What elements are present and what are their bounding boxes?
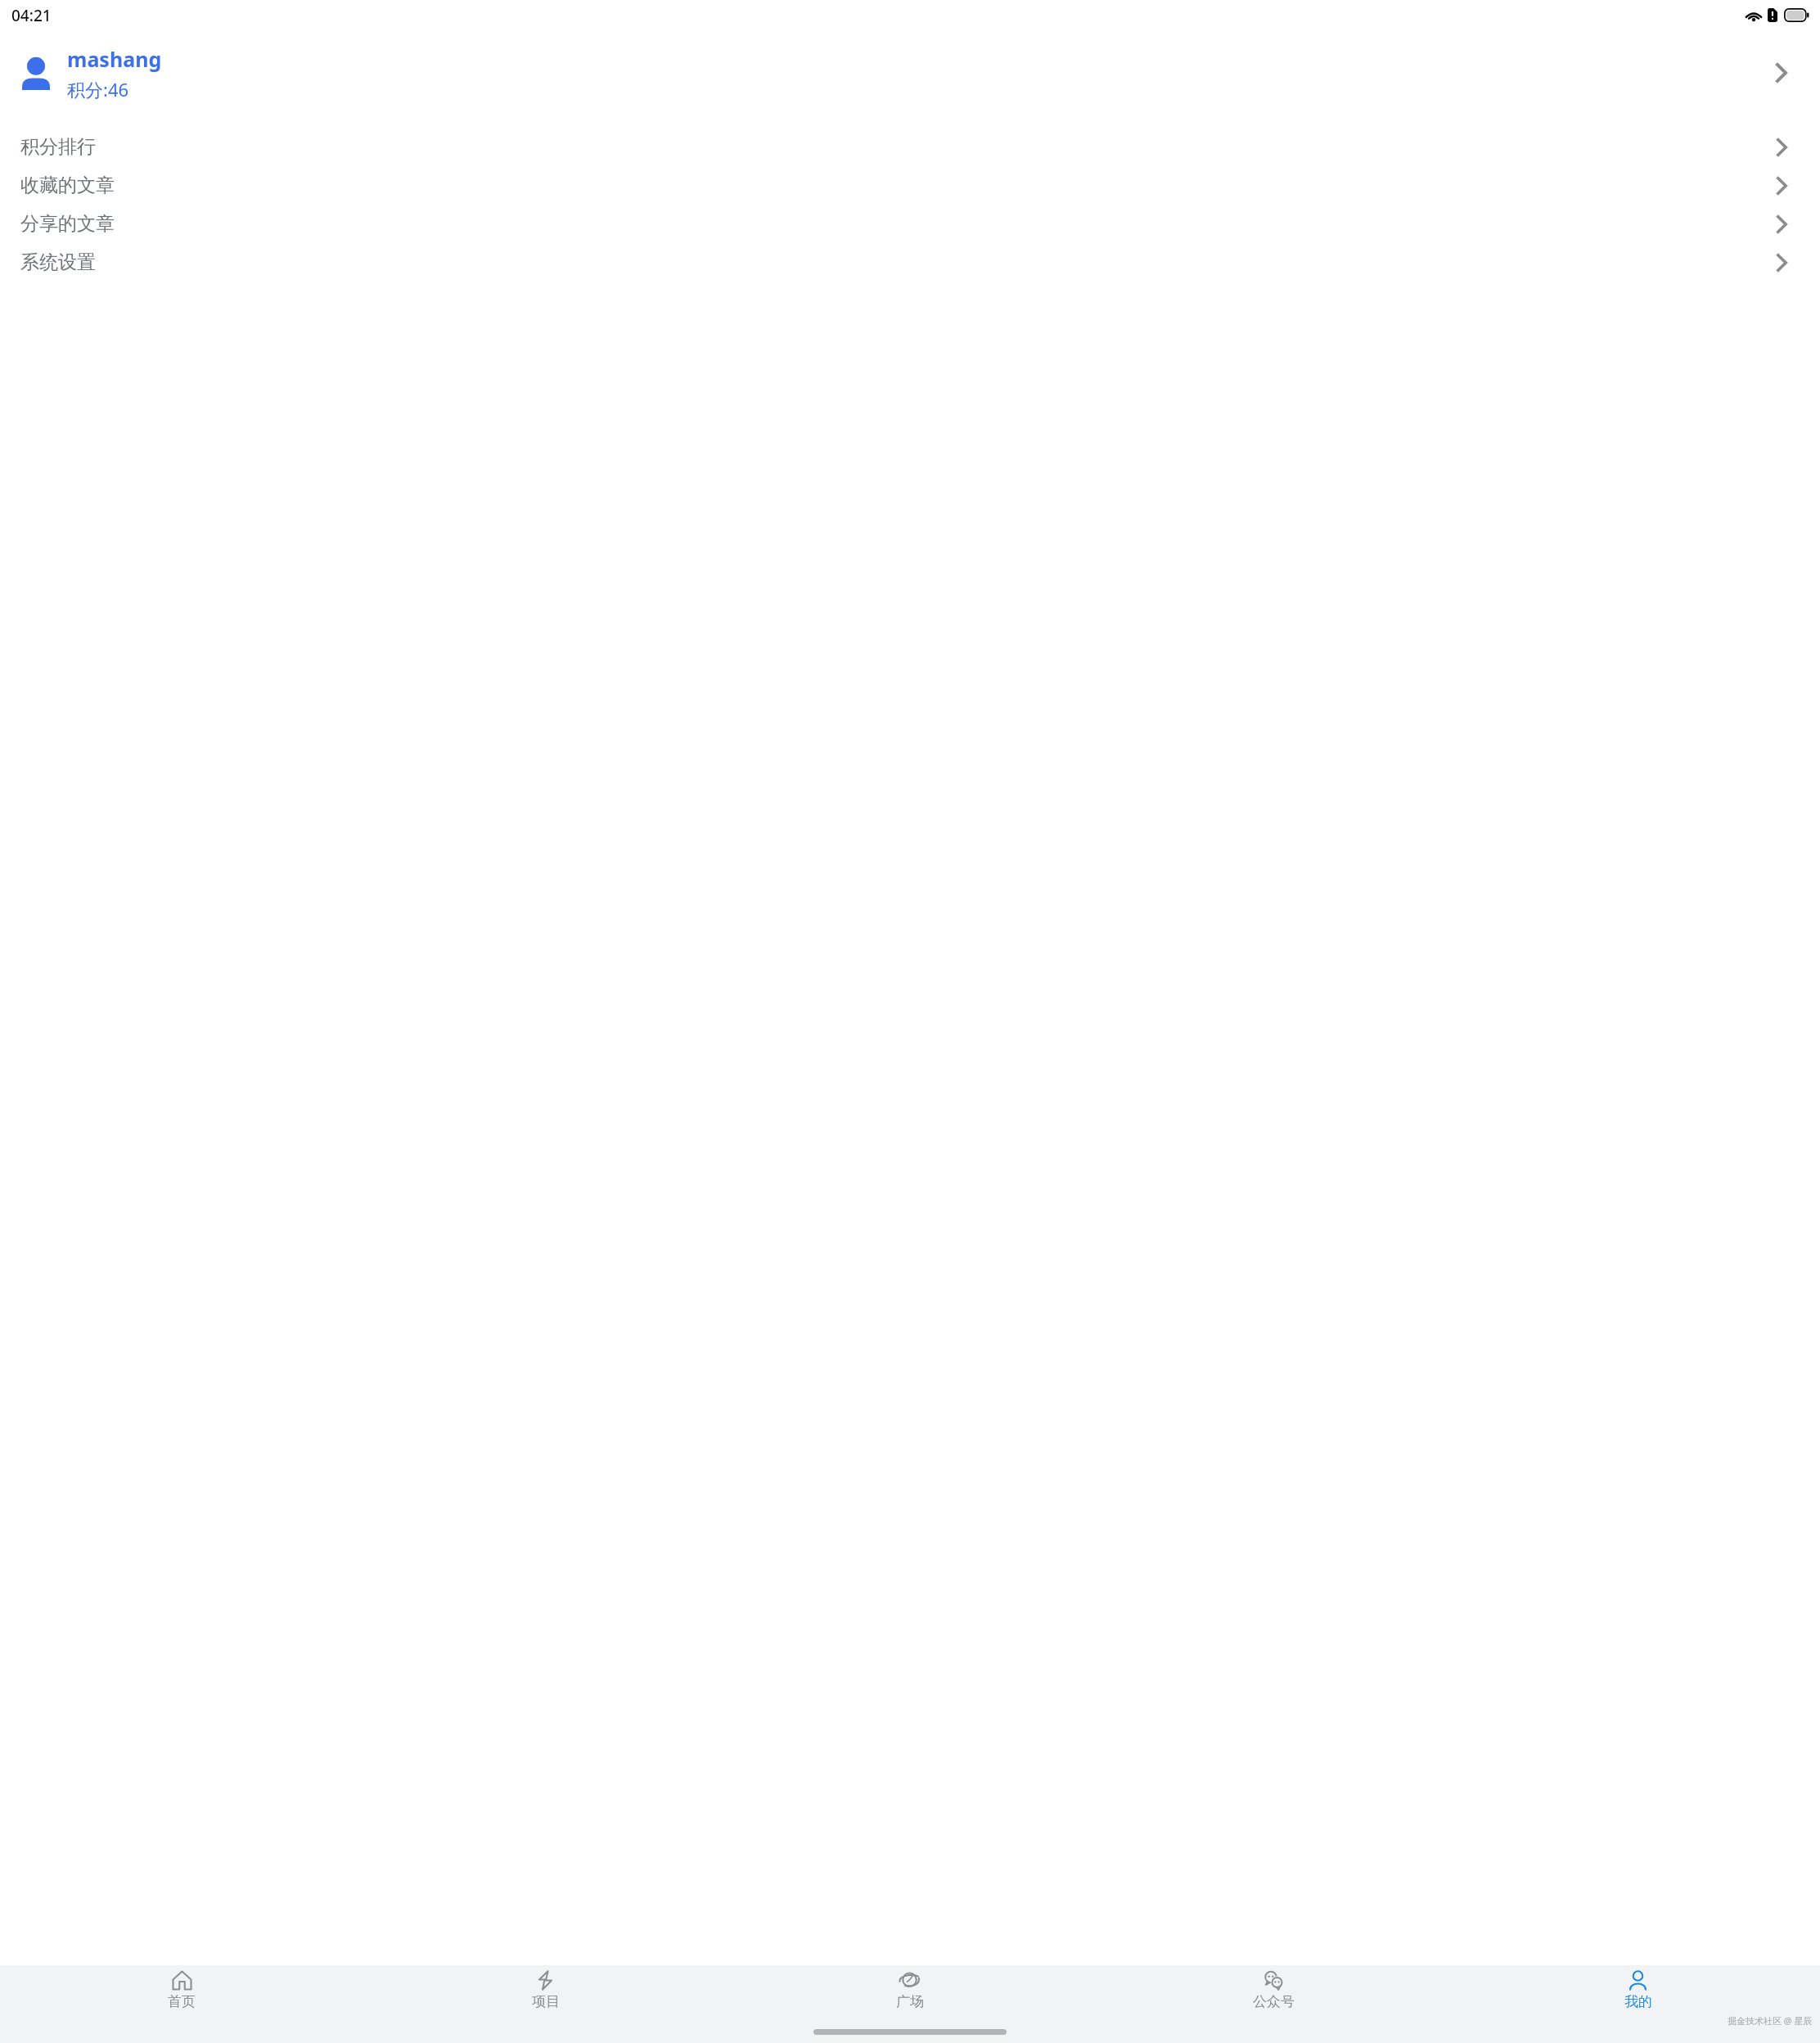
staticText: mashang	[67, 45, 162, 73]
button[interactable]: 收藏的文章	[0, 166, 1820, 205]
staticText: 系统设置	[20, 250, 96, 274]
button[interactable]: 公众号	[1092, 1965, 1456, 2014]
button[interactable]: 广场	[728, 1965, 1092, 2014]
button[interactable]: 系统设置	[0, 243, 1820, 282]
staticText: 掘金技术社区 @ 星辰	[1728, 2014, 1813, 2027]
button[interactable]: 分享的文章	[0, 205, 1820, 243]
staticText: 项目	[532, 1993, 560, 2010]
staticText: 积分:46	[67, 77, 129, 101]
button[interactable]: 我的	[1456, 1965, 1820, 2014]
button[interactable]: mashang	[0, 30, 1820, 115]
button[interactable]: 项目	[363, 1965, 728, 2014]
staticText: 我的	[1624, 1993, 1652, 2010]
staticText: 收藏的文章	[20, 174, 115, 197]
staticText: 公众号	[1253, 1993, 1295, 2010]
other: Open profile details	[1776, 63, 1787, 83]
staticText: 广场	[896, 1993, 924, 2010]
staticText: 04:21	[11, 5, 52, 26]
button[interactable]: 积分排行	[0, 128, 1820, 166]
staticText: 首页	[168, 1993, 196, 2010]
staticText: 分享的文章	[20, 212, 115, 236]
button[interactable]: 首页	[0, 1965, 363, 2014]
staticText: 积分排行	[20, 135, 96, 159]
